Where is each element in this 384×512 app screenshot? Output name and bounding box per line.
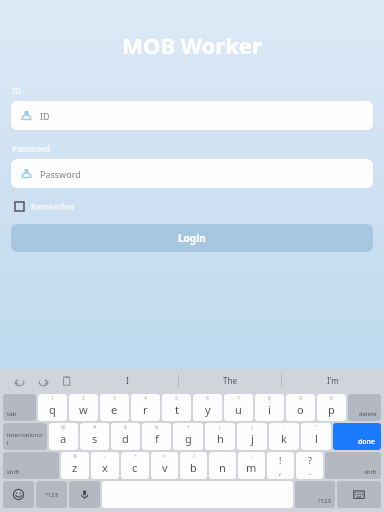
staticText: done <box>358 437 376 447</box>
button[interactable]: Remember <box>12 198 78 215</box>
button[interactable]: $ <box>111 423 140 450</box>
button[interactable]: 8 <box>255 394 284 421</box>
staticText: ' <box>283 424 285 431</box>
button[interactable]: 0 <box>317 394 346 421</box>
button[interactable]: 4 <box>131 394 160 421</box>
button[interactable]: done <box>333 423 381 450</box>
button[interactable]: " <box>301 423 331 450</box>
staticText: @ <box>61 424 66 431</box>
staticText: i <box>268 402 271 417</box>
staticText: x <box>102 460 108 475</box>
button[interactable]: + <box>121 452 149 479</box>
staticText: MOB Worker <box>0 30 384 60</box>
button[interactable]: ?123 <box>36 481 67 508</box>
staticText: 7 <box>237 395 240 402</box>
button[interactable]: @ <box>49 423 78 450</box>
button[interactable]: Password <box>11 159 373 188</box>
button[interactable]: = <box>151 452 178 479</box>
staticText: " <box>315 424 318 431</box>
button[interactable]: 2 <box>69 394 98 421</box>
staticText: Password <box>12 143 51 154</box>
button[interactable]: Paste <box>58 372 76 390</box>
staticText: q <box>49 402 56 417</box>
staticText: 4 <box>144 395 147 402</box>
staticText: p <box>328 402 335 417</box>
button[interactable]: % <box>61 452 89 479</box>
button[interactable]: ) <box>237 423 267 450</box>
button[interactable]: The <box>178 369 281 392</box>
staticText: ?123 <box>45 491 58 499</box>
staticText: shift <box>7 468 20 476</box>
button[interactable]: 3 <box>100 394 129 421</box>
button[interactable]: Undo <box>10 372 28 390</box>
button[interactable]: 7 <box>224 394 253 421</box>
button[interactable]: / <box>180 452 207 479</box>
button[interactable]: - <box>91 452 119 479</box>
staticText: Login <box>178 231 206 245</box>
staticText: Remember <box>31 201 75 212</box>
staticText: h <box>217 431 224 446</box>
button[interactable]: 9 <box>286 394 315 421</box>
button[interactable]: * <box>173 423 203 450</box>
button[interactable]: ? <box>296 452 323 479</box>
staticText: r <box>143 402 148 417</box>
button[interactable]: Hide keyboard <box>337 481 381 508</box>
button[interactable]: I <box>76 369 178 392</box>
staticText: 2 <box>82 395 85 402</box>
staticText: u <box>235 402 242 417</box>
staticText: # <box>93 424 97 431</box>
staticText: c <box>132 460 138 475</box>
button[interactable]: Redo <box>34 372 52 390</box>
button[interactable]: # <box>80 423 109 450</box>
staticText: , <box>279 466 282 477</box>
button[interactable]: ( <box>205 423 235 450</box>
button[interactable]: & <box>142 423 171 450</box>
button[interactable]: 5 <box>162 394 191 421</box>
staticText: j <box>251 431 254 446</box>
staticText: 6 <box>206 395 209 402</box>
button[interactable]: ! <box>267 452 294 479</box>
staticText: g <box>185 431 192 446</box>
staticText: v <box>162 460 168 475</box>
staticText: y <box>205 402 211 417</box>
staticText: % <box>73 453 78 460</box>
staticText: 8 <box>268 395 271 402</box>
button[interactable]: ' <box>269 423 299 450</box>
staticText: n <box>219 460 226 475</box>
button[interactable]: ID <box>11 101 373 130</box>
button[interactable]: Voice input <box>69 481 100 508</box>
staticText: shift <box>364 468 377 476</box>
button[interactable]: 6 <box>193 394 222 421</box>
button[interactable]: international <box>3 423 47 450</box>
staticText: ( <box>219 424 221 431</box>
staticText: e <box>111 402 118 417</box>
staticText: I'm <box>327 375 339 386</box>
button[interactable]: shift <box>325 452 381 479</box>
staticText: ?123 <box>318 497 331 505</box>
button[interactable]: tab <box>3 394 36 421</box>
button[interactable]: Login <box>11 224 373 252</box>
staticText: w <box>79 402 88 417</box>
staticText: m <box>246 460 257 475</box>
staticText: & <box>155 424 159 431</box>
button[interactable]: ; <box>238 452 265 479</box>
staticText: l <box>315 431 318 446</box>
staticText: 9 <box>299 395 302 402</box>
staticText: . <box>309 466 312 477</box>
staticText: ? <box>308 454 312 466</box>
staticText: t <box>175 402 179 417</box>
button[interactable]: ?123 <box>295 481 335 508</box>
button[interactable]: delete <box>348 394 381 421</box>
staticText: international <box>7 431 43 447</box>
staticText: delete <box>359 410 377 418</box>
staticText: 5 <box>175 395 178 402</box>
button[interactable]: shift <box>3 452 59 479</box>
staticText: o <box>297 402 304 417</box>
button[interactable]: I'm <box>281 369 384 392</box>
staticText: + <box>134 453 137 460</box>
button[interactable]: : <box>209 452 236 479</box>
staticText: k <box>281 431 287 446</box>
button[interactable]: 1 <box>38 394 67 421</box>
button[interactable]: Emoji <box>3 481 34 508</box>
